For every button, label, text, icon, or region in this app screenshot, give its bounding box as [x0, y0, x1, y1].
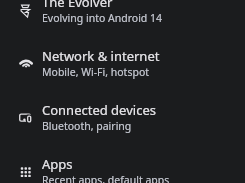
other: Apps [18, 163, 34, 179]
staticText: Connected devices [42, 101, 156, 119]
staticText: Network & internet [42, 47, 160, 65]
staticText: Mobile, Wi-Fi, hotspot [42, 65, 150, 79]
other: Network and internet [18, 55, 34, 71]
other: The Evolver [18, 1, 34, 17]
button[interactable]: Apps [0, 144, 245, 183]
staticText: Evolving into Android 14 [42, 11, 163, 25]
staticText: Bluetooth, pairing [42, 119, 132, 133]
staticText: Recent apps, default apps [42, 173, 170, 183]
button[interactable]: The Evolver [0, 0, 245, 36]
staticText: Apps [42, 155, 73, 173]
button[interactable]: Connected devices [0, 90, 245, 144]
staticText: The Evolver [42, 0, 113, 11]
button[interactable]: Network and internet [0, 36, 245, 90]
other: Connected devices [18, 109, 34, 125]
